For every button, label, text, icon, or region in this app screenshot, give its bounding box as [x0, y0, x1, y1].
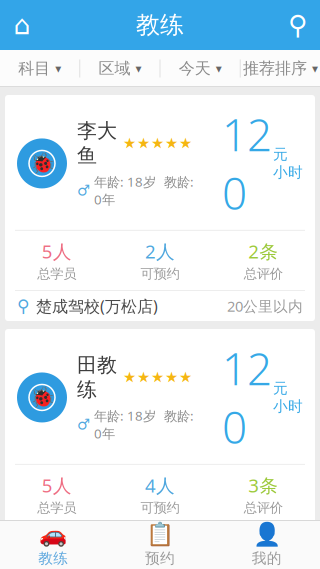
staticText: 海峰驾校 [36, 530, 100, 550]
button[interactable]: 🐞 [5, 563, 315, 569]
staticText: 120 [222, 339, 272, 456]
staticText: ★ [151, 369, 164, 385]
staticText: ♂ [77, 416, 90, 433]
staticText: 推荐排序 [243, 59, 307, 78]
staticText: 120 [222, 105, 272, 222]
staticText: ⚲ [17, 296, 30, 316]
staticText: 今天 [179, 59, 211, 78]
button[interactable]: 👤 [213, 520, 320, 569]
button[interactable]: 🐞 [5, 329, 315, 555]
staticText: ⌂ [13, 10, 30, 40]
staticText: 🐞 [29, 152, 54, 175]
staticText: ★ [165, 369, 178, 385]
staticText: 🚗 [39, 521, 67, 547]
staticText: 田教练 [77, 353, 117, 402]
staticText: 总学员 [37, 266, 76, 282]
staticText: 可预约 [140, 266, 179, 282]
staticText: 总评价 [244, 266, 283, 282]
button[interactable]: 区域 [80, 50, 159, 86]
staticText: 教练 [136, 10, 184, 40]
staticText: 5人 [42, 473, 72, 498]
staticText: 元 [273, 379, 288, 397]
staticText: 5人 [42, 239, 72, 264]
staticText: 年龄: 18岁 教龄: 0年 [94, 407, 194, 442]
staticText: 楚成驾校(万松店) [36, 295, 158, 317]
button[interactable]: 搜索 [276, 0, 320, 50]
button[interactable]: 今天 [160, 50, 240, 86]
staticText: 📋 [146, 521, 174, 547]
staticText: 可预约 [140, 500, 179, 516]
staticText: 2条 [248, 239, 278, 264]
staticText: 李大鱼 [77, 119, 117, 168]
staticText: 区域 [98, 59, 130, 78]
staticText: 预约 [145, 549, 175, 567]
staticText: 科目 [18, 59, 50, 78]
staticText: 总学员 [37, 500, 76, 516]
staticText: ★ [165, 135, 178, 151]
button[interactable]: 🐞 [5, 95, 315, 321]
staticText: 教练 [38, 549, 68, 567]
staticText: ★ [123, 369, 136, 385]
staticText: ▾ [216, 62, 222, 75]
staticText: ⚲ [288, 10, 308, 40]
staticText: ♂ [77, 182, 90, 199]
button[interactable]: 🚗 [0, 520, 107, 569]
staticText: ★ [179, 135, 192, 151]
staticText: 20公里以内 [227, 296, 303, 316]
staticText: 2人 [145, 239, 175, 264]
staticText: 年龄: 18岁 教龄: 0年 [94, 173, 194, 208]
staticText: ★ [137, 369, 150, 385]
staticText: 23公里以内 [227, 530, 303, 550]
staticText: 4人 [145, 473, 175, 498]
staticText: 小时 [273, 397, 303, 415]
staticText: ▾ [312, 62, 318, 75]
staticText: 小时 [273, 163, 303, 181]
staticText: ▾ [55, 62, 61, 75]
button[interactable]: 📋 [107, 520, 213, 569]
staticText: ★ [123, 135, 136, 151]
staticText: ★ [151, 135, 164, 151]
staticText: 元 [273, 145, 288, 163]
staticText: ▾ [135, 62, 141, 75]
staticText: 我的 [252, 549, 282, 567]
staticText: 总评价 [244, 500, 283, 516]
staticText: ★ [137, 135, 150, 151]
button[interactable]: 推荐排序 [241, 50, 320, 86]
staticText: 🐞 [29, 386, 54, 409]
staticText: ★ [179, 369, 192, 385]
button[interactable]: 个人中心 [0, 0, 44, 50]
staticText: 3条 [248, 473, 278, 498]
button[interactable]: 科目 [0, 50, 79, 86]
staticText: 👤 [253, 521, 281, 547]
